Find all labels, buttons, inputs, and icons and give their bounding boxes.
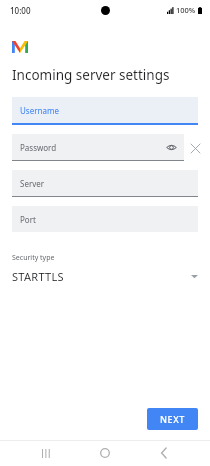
button[interactable]: NEXT bbox=[147, 408, 198, 430]
staticText: Security type bbox=[12, 253, 55, 263]
staticText: 100% bbox=[176, 5, 196, 15]
staticText: Password bbox=[20, 142, 57, 153]
staticText: 10:00 bbox=[10, 5, 31, 16]
staticText: Username bbox=[20, 105, 59, 116]
staticText: Server bbox=[20, 178, 45, 189]
staticText: NEXT bbox=[160, 413, 185, 425]
button[interactable]: Back bbox=[151, 440, 177, 466]
button[interactable]: Home bbox=[92, 440, 118, 466]
button[interactable]: Security type bbox=[0, 253, 210, 284]
staticText: Incoming server settings bbox=[12, 66, 170, 84]
staticText: STARTTLS bbox=[12, 269, 64, 284]
button[interactable]: Clear password bbox=[184, 137, 206, 159]
button[interactable]: Password bbox=[12, 134, 184, 161]
button[interactable]: Recent apps bbox=[33, 440, 59, 466]
other: Show password bbox=[166, 142, 177, 153]
staticText: Port bbox=[20, 214, 36, 225]
button[interactable]: Username bbox=[12, 97, 198, 125]
button[interactable]: Port bbox=[12, 206, 198, 233]
button[interactable]: Server bbox=[12, 170, 198, 197]
